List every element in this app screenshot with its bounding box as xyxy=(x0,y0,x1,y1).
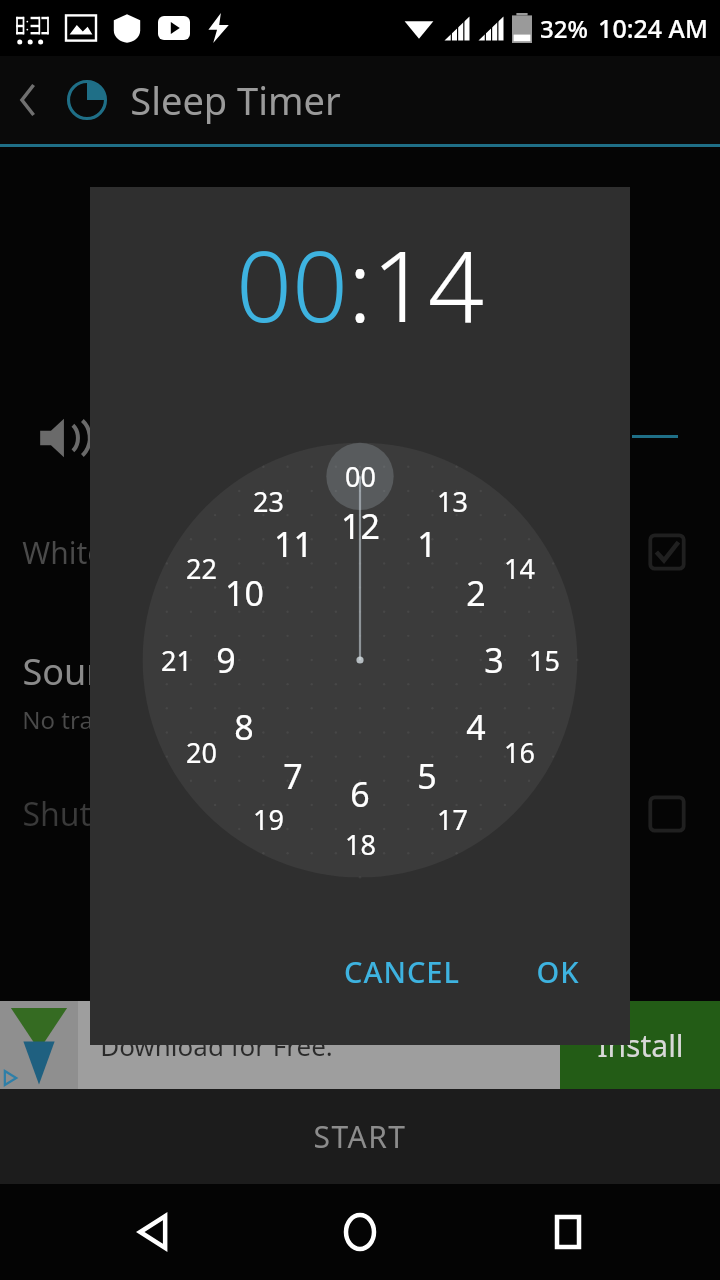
button[interactable]: 1 xyxy=(392,519,462,569)
staticText: 16 xyxy=(504,734,535,771)
staticText: 13 xyxy=(437,483,468,520)
staticText: No track selected xyxy=(22,703,217,736)
button[interactable]: 13 xyxy=(417,476,487,526)
button[interactable]: 3 xyxy=(459,635,529,685)
button[interactable]: 00 xyxy=(325,451,395,501)
staticText: 8 xyxy=(234,704,254,750)
staticText: Shutdown xyxy=(22,792,175,836)
staticText: CANCEL xyxy=(344,952,460,991)
button[interactable]: 5 xyxy=(392,751,462,801)
button[interactable]: START xyxy=(0,1089,720,1184)
button[interactable]: 15 xyxy=(509,635,579,685)
staticText: 15 xyxy=(529,642,560,679)
staticText: 21 xyxy=(161,642,192,679)
button[interactable]: Checked xyxy=(648,533,686,571)
button[interactable]: 14 xyxy=(484,543,554,593)
staticText: White noise xyxy=(22,532,188,573)
staticText: 12 xyxy=(341,503,380,549)
staticText: 19 xyxy=(253,801,284,838)
button[interactable]: 6 xyxy=(325,769,395,819)
staticText: 14 xyxy=(372,217,484,350)
button[interactable]: 4 xyxy=(441,702,511,752)
staticText: 2 xyxy=(466,570,486,616)
staticText: : xyxy=(348,217,372,350)
staticText: Install xyxy=(597,1025,684,1066)
button[interactable]: Install xyxy=(560,1001,720,1089)
button[interactable]: 19 xyxy=(233,794,303,844)
button[interactable]: 10 xyxy=(209,568,279,618)
staticText: 20 xyxy=(186,734,217,771)
staticText: OK xyxy=(536,952,580,991)
button[interactable]: CANCEL xyxy=(330,940,474,1003)
staticText: 32% xyxy=(540,12,588,45)
button[interactable]: 12 xyxy=(325,501,395,551)
staticText: 00 xyxy=(236,217,348,350)
staticText: 6 xyxy=(350,771,370,817)
button[interactable]: 7 xyxy=(258,751,328,801)
button[interactable]: 23 xyxy=(233,476,303,526)
button[interactable]: 2 xyxy=(441,568,511,618)
button[interactable]: Home xyxy=(305,1184,415,1280)
button[interactable]: Download for Free. xyxy=(0,1001,720,1089)
staticText: 14 xyxy=(504,550,535,587)
staticText: Sleep Timer xyxy=(130,74,341,126)
staticText: 11 xyxy=(274,521,313,567)
button[interactable]: 00 xyxy=(236,217,348,350)
staticText: 18 xyxy=(345,826,376,863)
button[interactable]: 11 xyxy=(258,519,328,569)
staticText: 22 xyxy=(186,550,217,587)
button[interactable]: 9 xyxy=(191,635,261,685)
staticText: 1 xyxy=(417,521,437,567)
button[interactable]: 17 xyxy=(417,794,487,844)
button[interactable]: 16 xyxy=(484,727,554,777)
button[interactable]: Back xyxy=(0,56,56,144)
staticText: 7 xyxy=(283,753,303,799)
button[interactable]: 22 xyxy=(166,543,236,593)
staticText: 4 xyxy=(466,704,486,750)
staticText: 5 xyxy=(417,753,437,799)
staticText: 10 xyxy=(225,570,264,616)
button[interactable]: Recent apps xyxy=(513,1184,623,1280)
button[interactable]: Back xyxy=(98,1184,208,1280)
button[interactable]: 14 xyxy=(372,217,484,350)
staticText: START xyxy=(313,1116,407,1157)
staticText: 10:24 AM xyxy=(598,11,708,45)
staticText: Sound xyxy=(22,647,131,696)
button[interactable]: 21 xyxy=(141,635,211,685)
button[interactable]: 8 xyxy=(209,702,279,752)
button[interactable]: 20 xyxy=(166,727,236,777)
staticText: 3 xyxy=(484,637,504,683)
button[interactable]: OK xyxy=(522,940,594,1003)
staticText: 17 xyxy=(437,801,468,838)
staticText: 00 xyxy=(345,458,376,495)
button[interactable]: Unchecked xyxy=(648,795,686,833)
staticText: 23 xyxy=(253,483,284,520)
staticText: 9 xyxy=(216,637,236,683)
staticText: Download for Free. xyxy=(100,1028,333,1063)
button[interactable]: 18 xyxy=(325,819,395,869)
